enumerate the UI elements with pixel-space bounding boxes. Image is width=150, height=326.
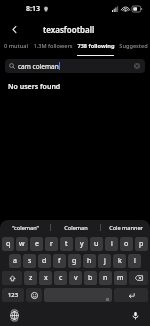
staticText: u xyxy=(94,239,99,249)
button[interactable]: Clear xyxy=(133,62,141,70)
staticText: 1.3M followers xyxy=(33,42,73,50)
staticText: 123 xyxy=(8,291,18,299)
staticText: No users found xyxy=(8,82,61,92)
staticText: b xyxy=(88,273,93,283)
button[interactable]: Coleman xyxy=(51,220,100,235)
button[interactable]: Return xyxy=(114,288,148,302)
button[interactable]: c xyxy=(54,271,67,285)
button[interactable]: Cole manner xyxy=(101,220,150,235)
staticText: "coleman" xyxy=(12,224,39,232)
staticText: texasfootball xyxy=(43,24,95,35)
staticText: e xyxy=(35,239,39,249)
button[interactable]: g xyxy=(68,254,81,268)
staticText: n xyxy=(103,273,108,283)
staticText: m xyxy=(117,273,124,283)
button[interactable]: z xyxy=(24,271,37,285)
button[interactable]: "coleman" xyxy=(0,220,50,235)
button[interactable]: k xyxy=(113,254,126,268)
button[interactable]: Space xyxy=(44,288,112,302)
button[interactable]: Voice input xyxy=(129,309,141,321)
button[interactable]: t xyxy=(60,237,73,251)
button[interactable]: e xyxy=(30,237,43,251)
staticText: g xyxy=(72,256,77,266)
button[interactable]: Back xyxy=(4,19,24,39)
staticText: 8:13 xyxy=(26,4,40,14)
button[interactable]: h xyxy=(83,254,96,268)
button[interactable]: x xyxy=(39,271,52,285)
staticText: Cole manner xyxy=(109,224,143,232)
button[interactable]: a xyxy=(9,254,21,268)
staticText: l xyxy=(134,256,136,266)
button[interactable]: j xyxy=(98,254,111,268)
staticText: x xyxy=(44,273,48,283)
staticText: h xyxy=(87,256,92,266)
staticText: d xyxy=(42,256,47,266)
staticText: s xyxy=(28,256,32,266)
button[interactable]: m xyxy=(114,271,127,285)
button[interactable]: n xyxy=(99,271,112,285)
staticText: cam coleman xyxy=(18,62,59,71)
button[interactable]: r xyxy=(45,237,58,251)
button[interactable]: Change language xyxy=(8,309,20,321)
button[interactable]: Suggested xyxy=(117,40,150,56)
button[interactable]: v xyxy=(69,271,82,285)
staticText: i xyxy=(111,239,113,249)
staticText: q xyxy=(6,239,11,249)
button[interactable]: l xyxy=(128,254,141,268)
staticText: w xyxy=(19,239,25,249)
staticText: o xyxy=(124,239,129,249)
button[interactable]: cam coleman xyxy=(5,59,145,73)
button[interactable]: u xyxy=(90,237,103,251)
staticText: 738 following xyxy=(77,42,115,50)
staticText: c xyxy=(59,273,63,283)
staticText: t xyxy=(65,239,68,249)
button[interactable]: d xyxy=(38,254,51,268)
button[interactable]: f xyxy=(53,254,66,268)
staticText: p xyxy=(139,239,144,249)
staticText: r xyxy=(50,239,53,249)
staticText: Coleman xyxy=(64,224,88,232)
staticText: v xyxy=(74,273,78,283)
button[interactable]: o xyxy=(120,237,133,251)
button[interactable]: w xyxy=(16,237,28,251)
staticText: Suggested xyxy=(119,42,148,50)
button[interactable]: Shift xyxy=(2,271,22,285)
staticText: 0 mutual xyxy=(4,42,28,50)
button[interactable]: y xyxy=(75,237,88,251)
staticText: a xyxy=(13,256,17,266)
button[interactable]: 0 mutual xyxy=(0,40,31,56)
button[interactable]: Backspace xyxy=(129,271,148,285)
staticText: f xyxy=(58,256,61,266)
staticText: y xyxy=(80,239,84,249)
button[interactable]: 738 following xyxy=(74,40,117,56)
button[interactable]: q xyxy=(2,237,14,251)
staticText: k xyxy=(118,256,122,266)
button[interactable]: i xyxy=(105,237,118,251)
button[interactable]: s xyxy=(23,254,36,268)
button[interactable]: Emoji xyxy=(26,288,42,302)
button[interactable]: 123 xyxy=(2,288,24,302)
button[interactable]: p xyxy=(135,237,148,251)
button[interactable]: 1.3M followers xyxy=(31,40,74,56)
staticText: j xyxy=(104,256,106,266)
button[interactable]: b xyxy=(84,271,97,285)
staticText: z xyxy=(29,273,33,283)
